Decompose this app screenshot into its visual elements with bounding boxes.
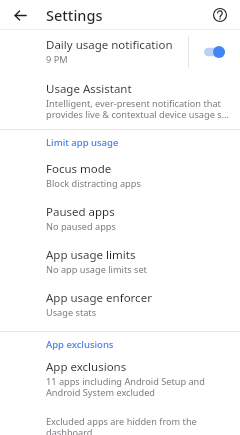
staticText: App usage enforcer bbox=[46, 290, 152, 306]
button[interactable]: Help bbox=[209, 4, 231, 26]
staticText: App exclusions bbox=[46, 338, 114, 351]
staticText: Focus mode bbox=[46, 161, 112, 177]
staticText: Excluded apps are hidden from the dashbo… bbox=[46, 415, 232, 435]
staticText: 11 apps including Android Setup and Andr… bbox=[46, 375, 232, 399]
staticText: Paused apps bbox=[46, 204, 115, 220]
button[interactable]: Paused apps bbox=[0, 197, 240, 240]
staticText: Settings bbox=[46, 5, 103, 25]
staticText: Usage Assistant bbox=[46, 81, 132, 97]
staticText: Daily usage notification bbox=[46, 37, 173, 53]
staticText: Intelligent, ever-present notification t… bbox=[46, 97, 230, 121]
staticText: Usage stats bbox=[46, 306, 97, 319]
button[interactable]: App exclusions bbox=[0, 356, 240, 405]
staticText: No paused apps bbox=[46, 220, 116, 233]
button[interactable]: Daily usage notification bbox=[0, 30, 240, 73]
staticText: Limit app usage bbox=[46, 136, 119, 149]
button[interactable]: Daily usage notification toggle bbox=[189, 32, 240, 72]
button[interactable]: App usage enforcer bbox=[0, 283, 240, 326]
staticText: No app usage limits set bbox=[46, 263, 147, 276]
button[interactable]: App usage limits bbox=[0, 240, 240, 283]
button[interactable]: Usage Assistant bbox=[0, 79, 240, 129]
button[interactable]: Back bbox=[9, 4, 31, 26]
staticText: App usage limits bbox=[46, 247, 136, 263]
staticText: Block distracting apps bbox=[46, 177, 141, 190]
staticText: App exclusions bbox=[46, 359, 127, 375]
staticText: 9 PM bbox=[46, 53, 68, 66]
button[interactable]: Focus mode bbox=[0, 154, 240, 197]
